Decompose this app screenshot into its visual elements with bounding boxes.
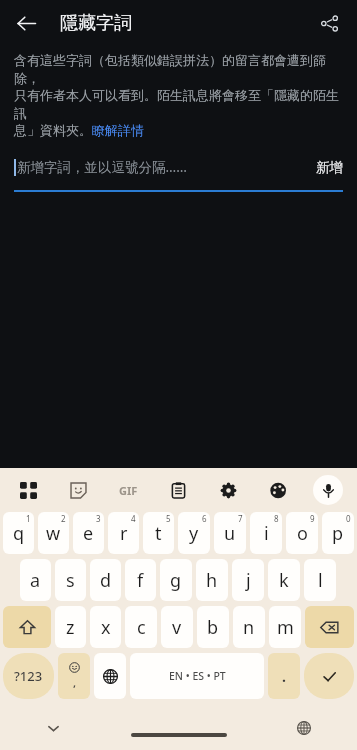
button[interactable]: Backspace	[305, 606, 354, 648]
button[interactable]: d	[90, 559, 121, 601]
staticText: m	[277, 615, 294, 640]
staticText: 7	[238, 513, 243, 524]
staticText: u	[224, 521, 236, 546]
staticText: 含有這些字詞（包括類似錯誤拼法）的留言都會遭到篩除，	[14, 52, 343, 87]
staticText: z	[66, 615, 75, 640]
button[interactable]: Voice input	[313, 475, 343, 505]
button[interactable]: g	[160, 559, 192, 601]
staticText: GIF	[119, 483, 138, 498]
button[interactable]: .	[268, 653, 300, 699]
button[interactable]: Stickers	[53, 468, 103, 512]
staticText: 隱藏字詞	[60, 12, 132, 35]
staticText: b	[207, 615, 219, 640]
button[interactable]: Switch input method	[287, 711, 321, 745]
staticText: EN • ES • PT	[169, 669, 226, 683]
button[interactable]: Back	[6, 3, 46, 43]
staticText: o	[297, 521, 308, 546]
button[interactable]: ?123	[3, 653, 54, 699]
button[interactable]: Enter	[304, 653, 354, 699]
button[interactable]: z	[55, 606, 86, 648]
staticText: 9	[310, 513, 315, 524]
staticText: f	[137, 568, 144, 593]
button[interactable]: Emoji and comma	[58, 653, 90, 699]
button[interactable]: o	[286, 512, 318, 554]
button[interactable]: v	[161, 606, 193, 648]
button[interactable]: s	[55, 559, 86, 601]
staticText: p	[332, 521, 344, 546]
button[interactable]: q	[3, 512, 34, 554]
staticText: j	[246, 568, 251, 593]
button[interactable]: e	[73, 512, 104, 554]
staticText: 6	[202, 513, 207, 524]
button[interactable]: w	[38, 512, 69, 554]
button[interactable]: GIF	[103, 468, 153, 512]
button[interactable]: a	[20, 559, 51, 601]
staticText: k	[279, 568, 289, 593]
staticText: 2	[61, 513, 66, 524]
button[interactable]: x	[90, 606, 121, 648]
staticText: 8	[274, 513, 279, 524]
staticText: q	[13, 521, 25, 546]
staticText: r	[120, 521, 128, 546]
staticText: c	[137, 615, 146, 640]
button[interactable]: h	[196, 559, 228, 601]
button[interactable]: Change language	[94, 653, 126, 699]
button[interactable]: Apps	[4, 468, 53, 512]
staticText: 5	[166, 513, 171, 524]
staticText: x	[101, 615, 111, 640]
staticText: ?123	[14, 667, 43, 685]
button[interactable]: Settings	[203, 468, 253, 512]
staticText: y	[189, 521, 199, 546]
staticText: i	[264, 521, 269, 546]
button[interactable]: c	[125, 606, 157, 648]
button[interactable]: 新增字詞，並以逗號分隔……	[14, 152, 343, 182]
button[interactable]: t	[143, 512, 174, 554]
staticText: 0	[346, 513, 351, 524]
staticText: 4	[131, 513, 136, 524]
staticText: 新增字詞，並以逗號分隔……	[17, 158, 308, 176]
button[interactable]: p	[322, 512, 354, 554]
button[interactable]: m	[269, 606, 301, 648]
button[interactable]: l	[304, 559, 336, 601]
button[interactable]: Share	[309, 3, 349, 43]
staticText: w	[46, 521, 61, 546]
button[interactable]: 新增	[308, 159, 343, 176]
button[interactable]: Home	[131, 733, 227, 737]
button[interactable]: n	[233, 606, 265, 648]
staticText: l	[318, 568, 323, 593]
staticText: d	[100, 568, 112, 593]
button[interactable]: j	[232, 559, 264, 601]
button[interactable]: 瞭解詳情	[92, 122, 144, 138]
staticText: 只有作者本人可以看到。陌生訊息將會移至「隱藏的陌生訊	[14, 87, 343, 122]
button[interactable]: b	[197, 606, 229, 648]
button[interactable]: Clipboard	[153, 468, 203, 512]
button[interactable]: f	[125, 559, 156, 601]
staticText: a	[30, 568, 41, 593]
staticText: t	[155, 521, 162, 546]
staticText: 瞭解詳情	[92, 122, 144, 138]
button[interactable]: r	[108, 512, 139, 554]
staticText: g	[170, 568, 182, 593]
staticText: e	[83, 521, 94, 546]
staticText: 息」資料夾。	[14, 122, 92, 138]
button[interactable]: Theme	[253, 468, 303, 512]
staticText: ,	[73, 675, 77, 690]
button[interactable]: u	[214, 512, 246, 554]
staticText: h	[206, 568, 218, 593]
button[interactable]: k	[268, 559, 300, 601]
staticText: 3	[96, 513, 101, 524]
staticText: 1	[26, 513, 31, 524]
button[interactable]: y	[178, 512, 210, 554]
button[interactable]: Hide keyboard	[36, 711, 70, 745]
staticText: 新增	[316, 159, 343, 176]
staticText: n	[243, 615, 255, 640]
staticText: .	[282, 667, 286, 686]
button[interactable]: EN • ES • PT	[130, 653, 264, 699]
staticText: v	[172, 615, 182, 640]
button[interactable]: i	[250, 512, 282, 554]
staticText: s	[66, 568, 75, 593]
button[interactable]: Shift	[3, 606, 51, 648]
